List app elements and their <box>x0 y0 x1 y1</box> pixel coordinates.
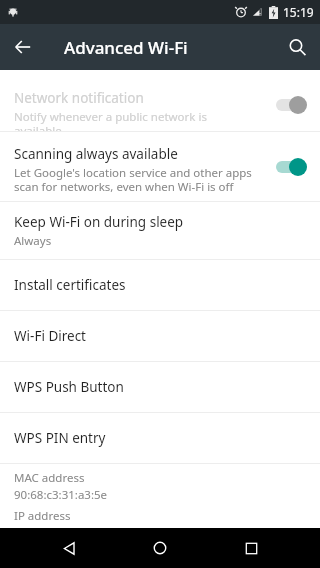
button[interactable]: WPS Push Button <box>0 362 320 412</box>
button[interactable]: Keep Wi-Fi on during sleep <box>0 202 320 259</box>
staticText: WPS Push Button <box>14 378 124 396</box>
staticText: Always <box>14 233 52 249</box>
staticText: Scanning always available <box>14 145 178 163</box>
staticText: 90:68:c3:31:a3:5e <box>14 487 108 503</box>
button[interactable]: Network notification <box>0 79 320 131</box>
staticText: Install certificates <box>14 276 126 294</box>
staticText: IP address <box>14 508 71 524</box>
staticText: MAC address <box>14 470 85 486</box>
button[interactable]: WPS PIN entry <box>0 413 320 463</box>
button[interactable]: Home <box>138 528 182 568</box>
staticText: 15:19 <box>283 4 314 20</box>
staticText: Let Google's location service and other … <box>14 165 253 194</box>
button[interactable]: Back <box>47 528 91 568</box>
staticText: Network notification <box>14 89 144 107</box>
button[interactable]: Install certificates <box>0 260 320 310</box>
button[interactable]: Search <box>274 24 320 70</box>
staticText: WPS PIN entry <box>14 429 106 447</box>
staticText: Notify whenever a public network is avai… <box>14 109 253 131</box>
button[interactable]: Scanning always available <box>0 132 320 201</box>
button[interactable]: Wi-Fi Direct <box>0 311 320 361</box>
button[interactable]: Recent apps <box>229 528 273 568</box>
staticText: Keep Wi-Fi on during sleep <box>14 213 184 231</box>
button[interactable]: Back <box>0 24 46 70</box>
staticText: Advanced Wi-Fi <box>64 36 188 59</box>
staticText: Wi-Fi Direct <box>14 327 86 345</box>
